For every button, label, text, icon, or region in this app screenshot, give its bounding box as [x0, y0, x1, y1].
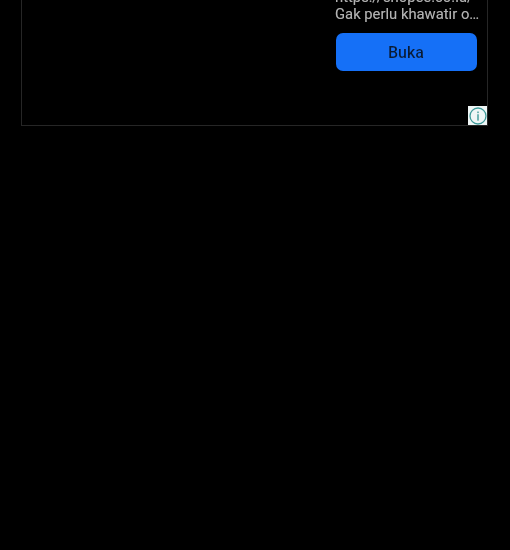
staticText: Buka [388, 43, 425, 62]
staticText: https://shopee.co.id/ · [335, 0, 481, 5]
staticText: Gak perlu khawatir o… [335, 5, 480, 22]
button[interactable]: Ad choices information [468, 106, 488, 126]
button[interactable]: Buka [336, 33, 477, 71]
button[interactable]: https://shopee.co.id/ · [21, 0, 488, 126]
